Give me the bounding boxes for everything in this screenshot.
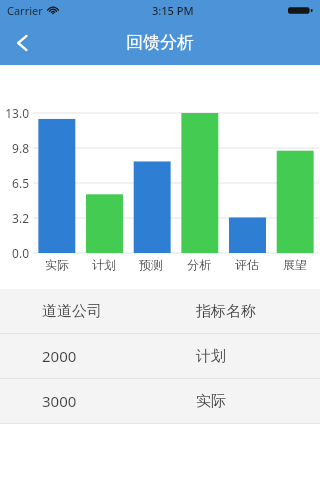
staticText: 指标名称 [196,302,256,321]
staticText: 展望 [283,257,307,272]
staticText: 2000 [42,346,77,366]
staticText: 3000 [42,391,77,411]
staticText: 预测 [139,257,163,272]
staticText: 实际 [45,257,69,272]
staticText: Carrier [7,3,43,18]
staticText: 0.0 [12,245,29,261]
staticText: 实际 [196,392,226,411]
staticText: 道道公司 [42,302,102,321]
button[interactable]: 道道公司 [0,289,320,333]
staticText: 计划 [92,257,116,272]
staticText: 计划 [196,347,226,366]
staticText: 9.8 [12,140,29,156]
staticText: 13.0 [5,105,29,121]
button[interactable]: Back [0,20,46,65]
staticText: 3.2 [12,210,29,226]
button[interactable]: 3000 [0,379,320,423]
staticText: 3:15 PM [152,3,194,18]
staticText: 回馈分析 [126,32,194,53]
staticText: 分析 [187,257,211,272]
staticText: 评估 [235,257,259,272]
button[interactable]: 2000 [0,334,320,378]
staticText: 6.5 [12,175,29,191]
